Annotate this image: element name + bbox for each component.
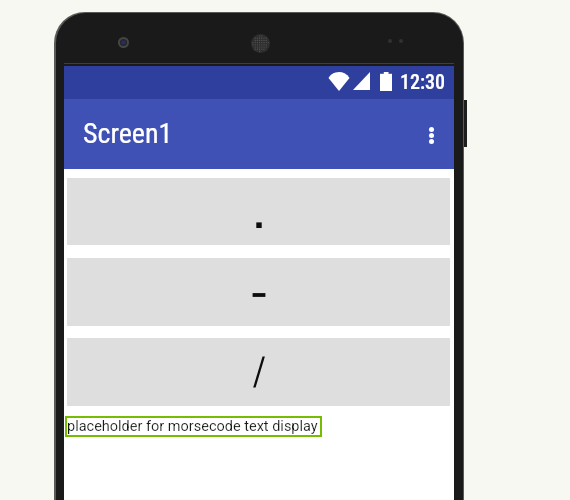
button[interactable]: More options	[411, 115, 451, 155]
staticText: placeholder for morsecode text display	[67, 418, 318, 435]
button[interactable]: dot	[67, 178, 450, 245]
button[interactable]: word separator	[67, 338, 450, 406]
button[interactable]: dash	[67, 258, 450, 326]
staticText: Screen1	[83, 117, 173, 150]
staticText: 12:30	[400, 70, 446, 93]
button[interactable]: placeholder for morsecode text display	[65, 416, 322, 437]
